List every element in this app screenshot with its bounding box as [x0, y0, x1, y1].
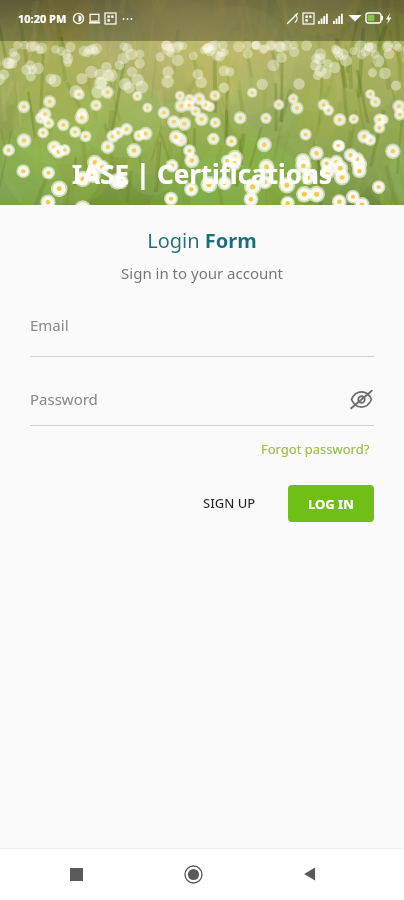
staticText: SIGN UP: [203, 494, 256, 512]
button[interactable]: Forgot password?: [257, 436, 374, 462]
staticText: Login Form: [0, 227, 404, 254]
button[interactable]: SIGN UP: [189, 484, 270, 522]
staticText: 10:20 PM: [18, 11, 67, 26]
button[interactable]: Password: [30, 386, 374, 426]
button[interactable]: Show password: [348, 386, 374, 412]
button[interactable]: Email: [30, 315, 374, 357]
staticText: Email: [30, 315, 69, 335]
staticText: IASE | Certifications: [0, 156, 404, 191]
staticText: LOG IN: [308, 495, 354, 513]
button[interactable]: Home: [170, 851, 216, 897]
staticText: Forgot password?: [261, 440, 370, 458]
staticText: Password: [30, 389, 348, 409]
staticText: Sign in to your account: [0, 263, 404, 283]
button[interactable]: Back: [287, 851, 333, 897]
button[interactable]: LOG IN: [288, 485, 374, 522]
button[interactable]: Recent apps: [53, 851, 99, 897]
